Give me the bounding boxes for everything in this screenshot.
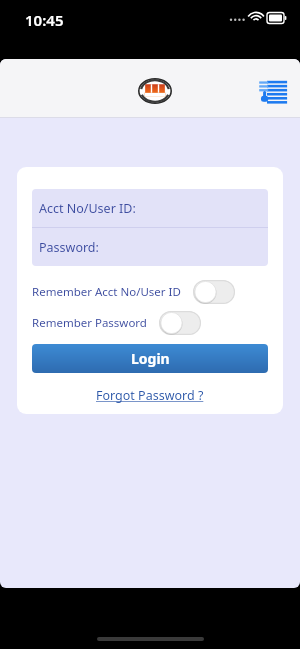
button[interactable]: Forgot Password ? [90,385,210,406]
staticText: Forgot Password ? [96,387,204,404]
staticText: Remember Acct No/User ID [32,284,181,300]
button[interactable]: Remember Password [32,311,268,335]
button[interactable]: Password: [32,228,268,266]
staticText: 10:45 [25,10,64,30]
button[interactable]: Enroll [258,76,288,106]
button[interactable]: Acct No/User ID: [32,189,268,227]
button[interactable]: Bank logo [138,78,172,104]
staticText: Remember Password [32,315,147,331]
staticText: Acct No/User ID: [39,200,136,217]
staticText: Password: [39,239,99,256]
staticText: Login [131,349,170,368]
button[interactable]: Login [32,344,268,373]
button[interactable]: Remember Acct No/User ID [32,280,268,304]
